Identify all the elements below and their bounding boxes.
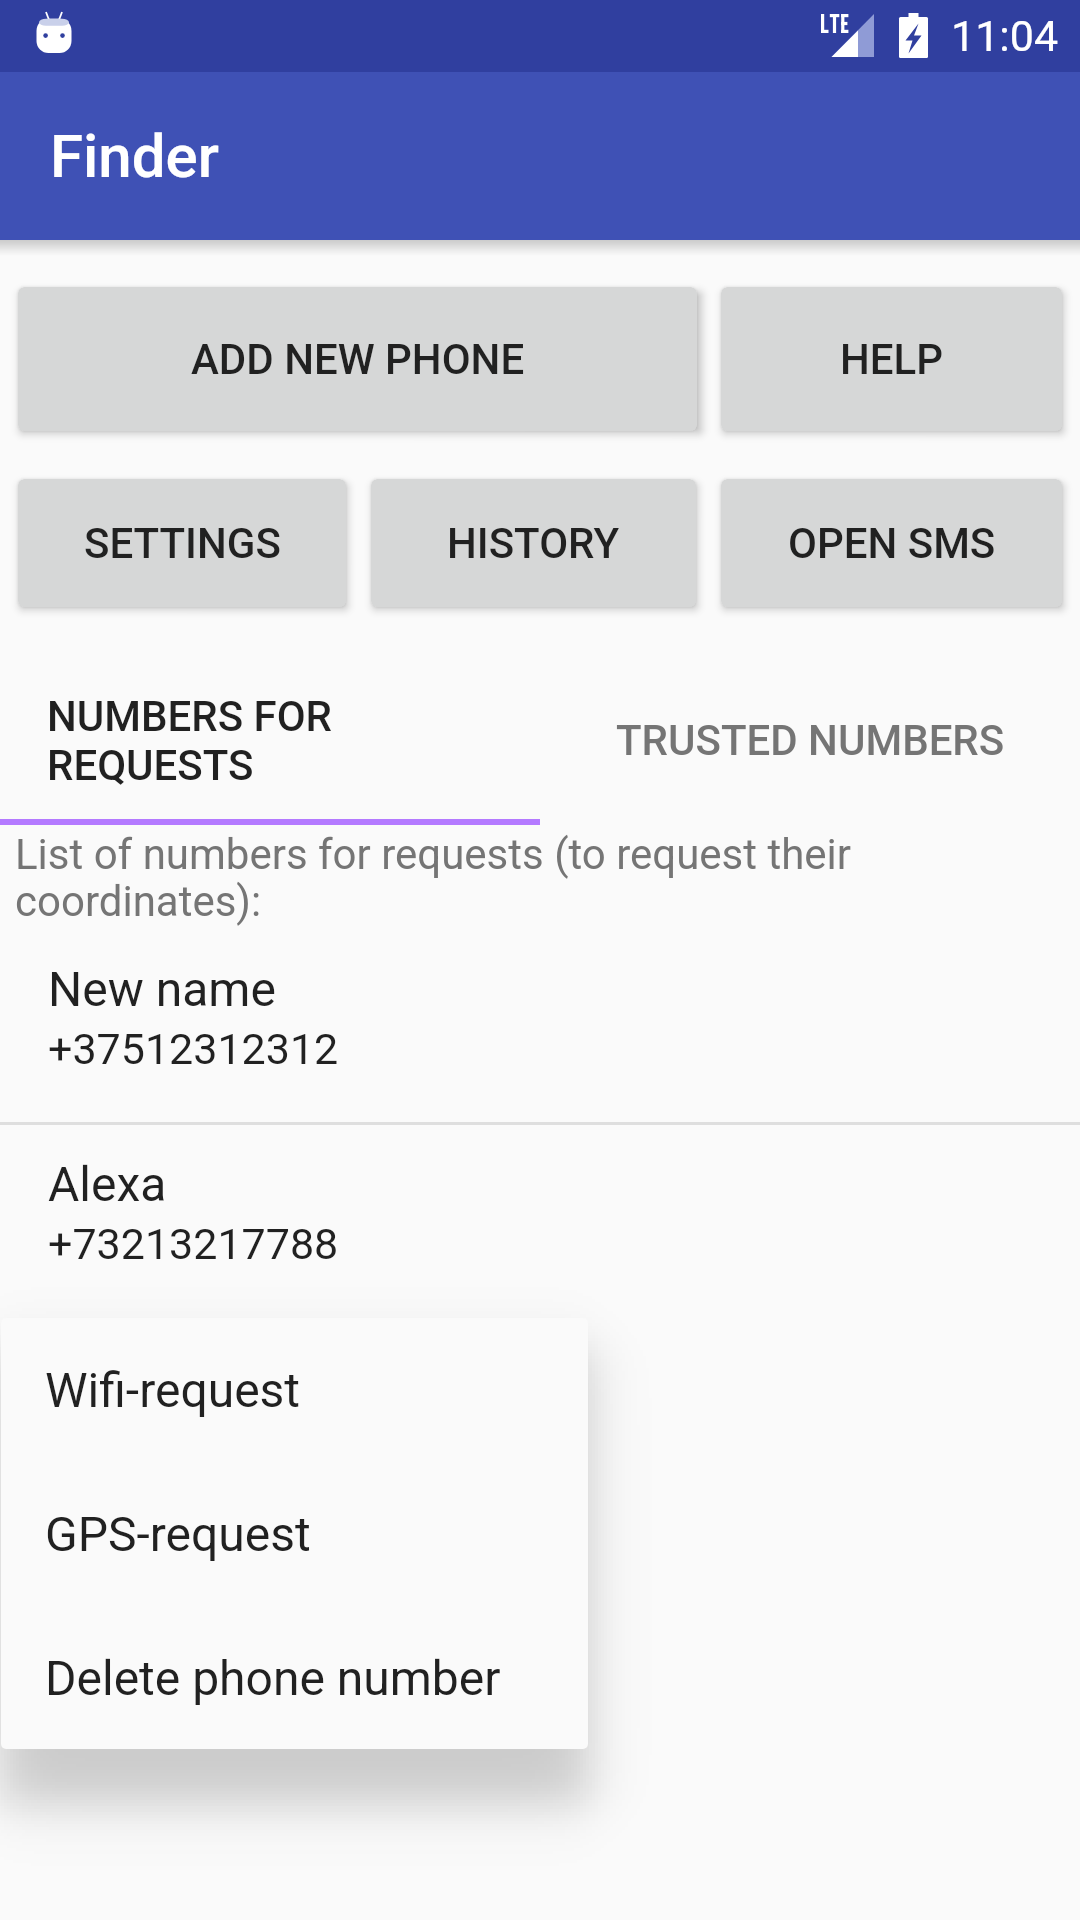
staticText: OPEN SMS — [788, 519, 996, 568]
staticText: HELP — [840, 335, 944, 384]
button[interactable]: NUMBERS FOR REQUESTS — [0, 654, 540, 827]
staticText: +73213217788 — [48, 1219, 339, 1269]
staticText: Delete phone number — [45, 1650, 501, 1706]
staticText: Alexa — [48, 1156, 167, 1212]
staticText: Wifi-request — [45, 1362, 301, 1418]
button[interactable]: Delete phone number — [1, 1606, 588, 1749]
staticText: NUMBERS FOR REQUESTS — [47, 692, 380, 790]
staticText: SETTINGS — [84, 519, 281, 568]
staticText: Finder — [50, 121, 219, 191]
button[interactable]: HELP — [721, 287, 1062, 431]
staticText: ADD NEW PHONE — [191, 335, 525, 384]
other: LTE signal — [821, 14, 875, 58]
button[interactable]: HISTORY — [371, 479, 696, 607]
staticText: List of numbers for requests (to request… — [15, 830, 890, 926]
button[interactable]: SETTINGS — [18, 479, 346, 607]
other: Android — [30, 10, 78, 58]
staticText: +37512312312 — [48, 1024, 339, 1074]
other: Battery charging — [899, 13, 929, 59]
button[interactable]: New name — [0, 934, 1080, 1122]
staticText: New name — [48, 961, 276, 1017]
staticText: TRUSTED NUMBERS — [616, 716, 1005, 765]
button[interactable]: Alexa — [0, 1125, 1080, 1315]
staticText: 11:04 — [951, 11, 1059, 61]
button[interactable]: ADD NEW PHONE — [18, 287, 697, 431]
button[interactable]: TRUSTED NUMBERS — [540, 654, 1080, 827]
button[interactable]: GPS-request — [1, 1462, 588, 1606]
button[interactable]: Wifi-request — [1, 1318, 588, 1462]
staticText: HISTORY — [447, 519, 620, 568]
button[interactable]: OPEN SMS — [721, 479, 1062, 607]
staticText: GPS-request — [45, 1506, 311, 1562]
